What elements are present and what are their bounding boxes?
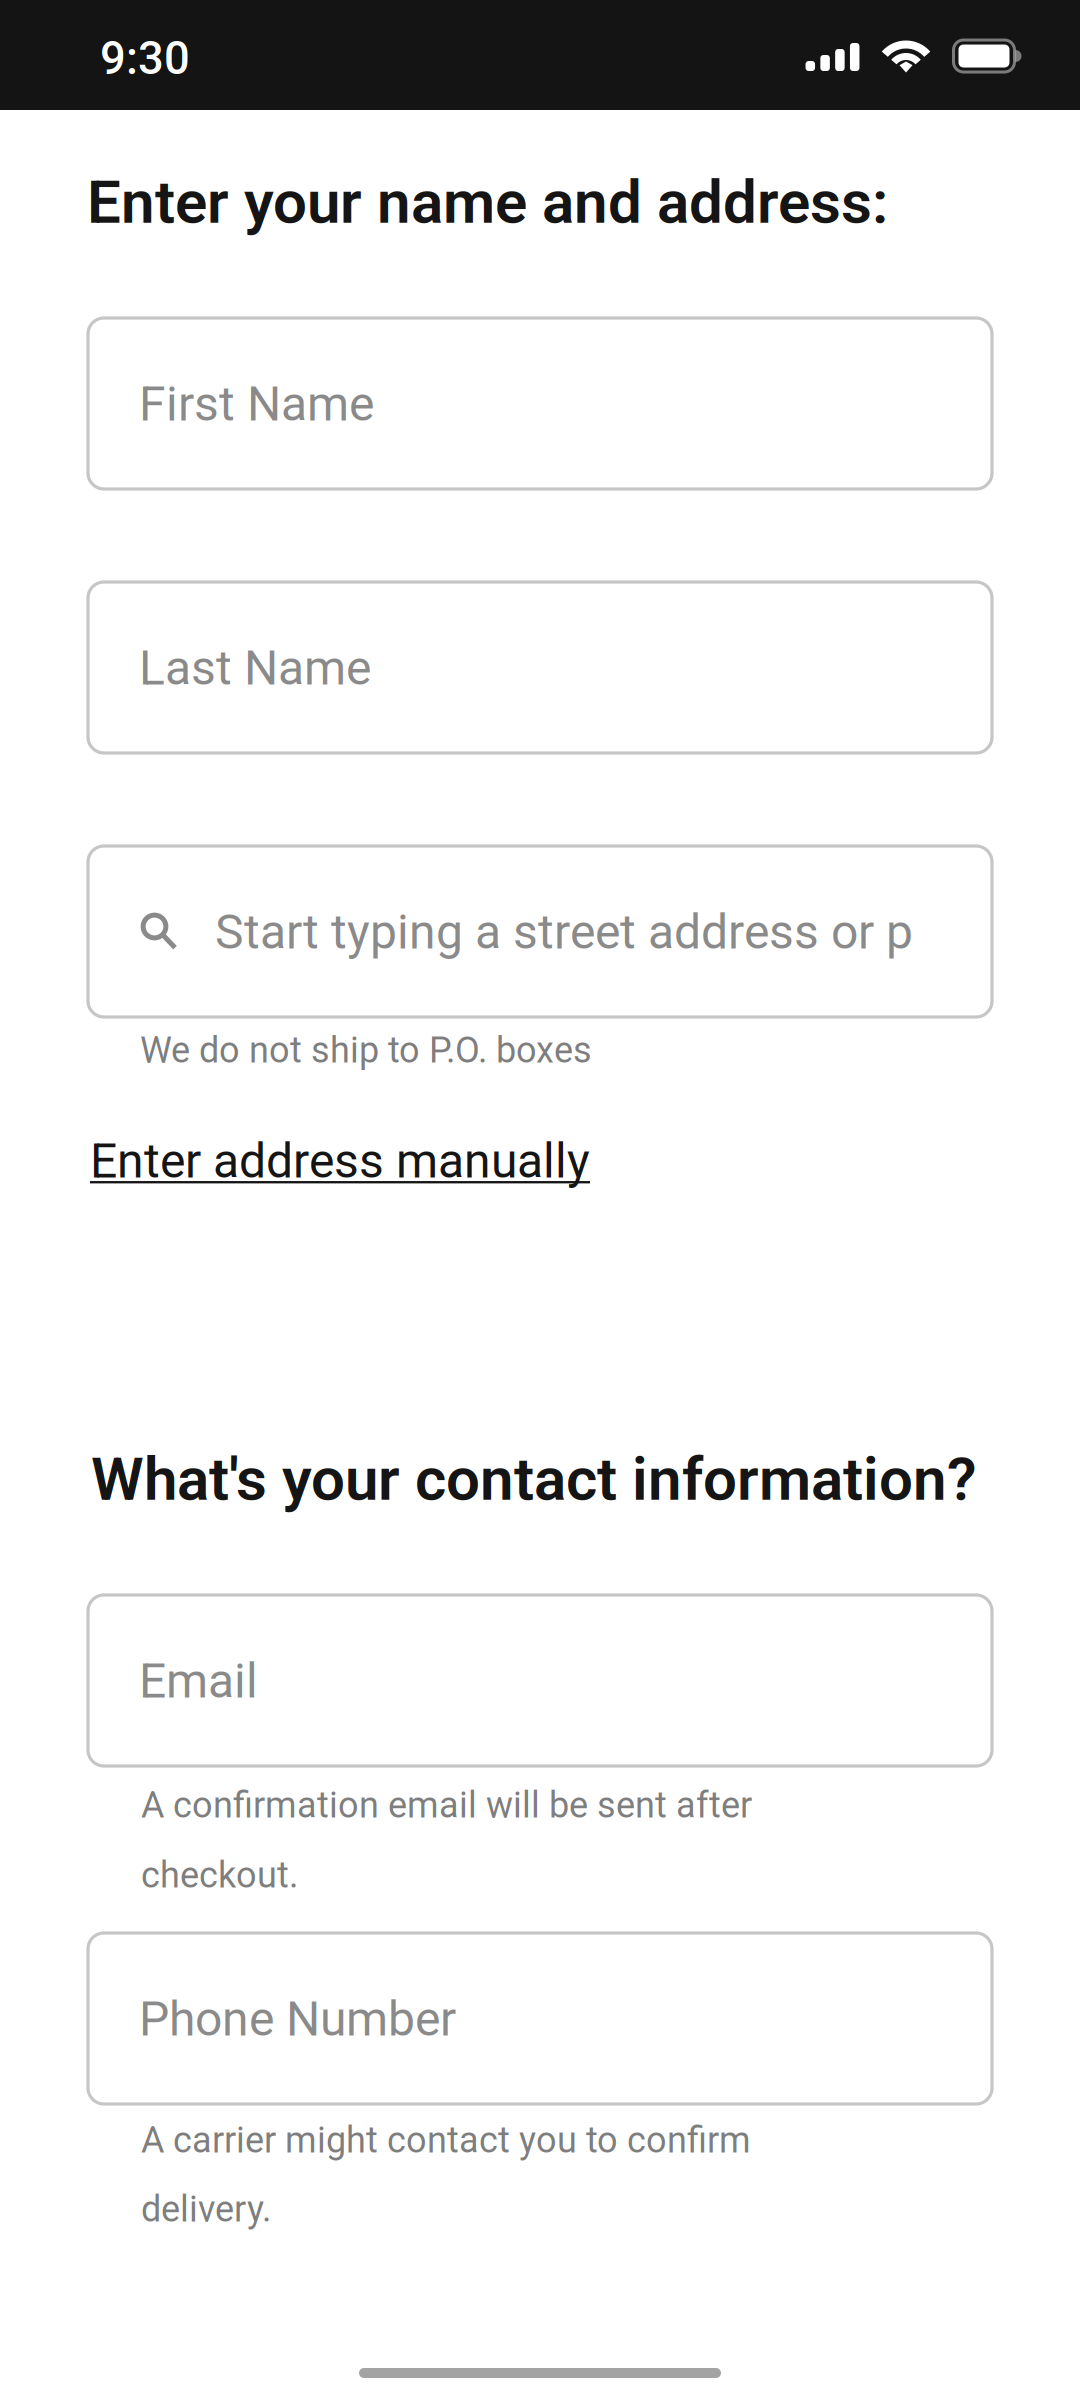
staticText: Enter address manually: [90, 1133, 590, 1189]
staticText: 9:30: [100, 32, 190, 85]
staticText: delivery.: [141, 2188, 271, 2230]
staticText: First Name: [139, 376, 374, 432]
staticText: Email: [139, 1653, 258, 1709]
staticText: Phone Number: [139, 1991, 456, 2047]
button[interactable]: Phone Number: [88, 1933, 992, 2104]
button[interactable]: Start typing a street address or p: [88, 846, 992, 1017]
staticText: Start typing a street address or p: [215, 904, 913, 960]
staticText: Last Name: [139, 640, 371, 696]
button[interactable]: Last Name: [88, 582, 992, 753]
button[interactable]: Email: [88, 1595, 992, 1766]
staticText: What's your contact information?: [91, 1444, 977, 1514]
staticText: Enter your name and address:: [87, 167, 888, 237]
staticText: A confirmation email will be sent after: [141, 1784, 752, 1826]
staticText: A carrier might contact you to confirm: [141, 2119, 751, 2161]
staticText: checkout.: [141, 1854, 298, 1896]
button[interactable]: Enter address manually: [90, 1133, 590, 1189]
button[interactable]: First Name: [88, 318, 992, 489]
staticText: We do not ship to P.O. boxes: [140, 1029, 592, 1071]
